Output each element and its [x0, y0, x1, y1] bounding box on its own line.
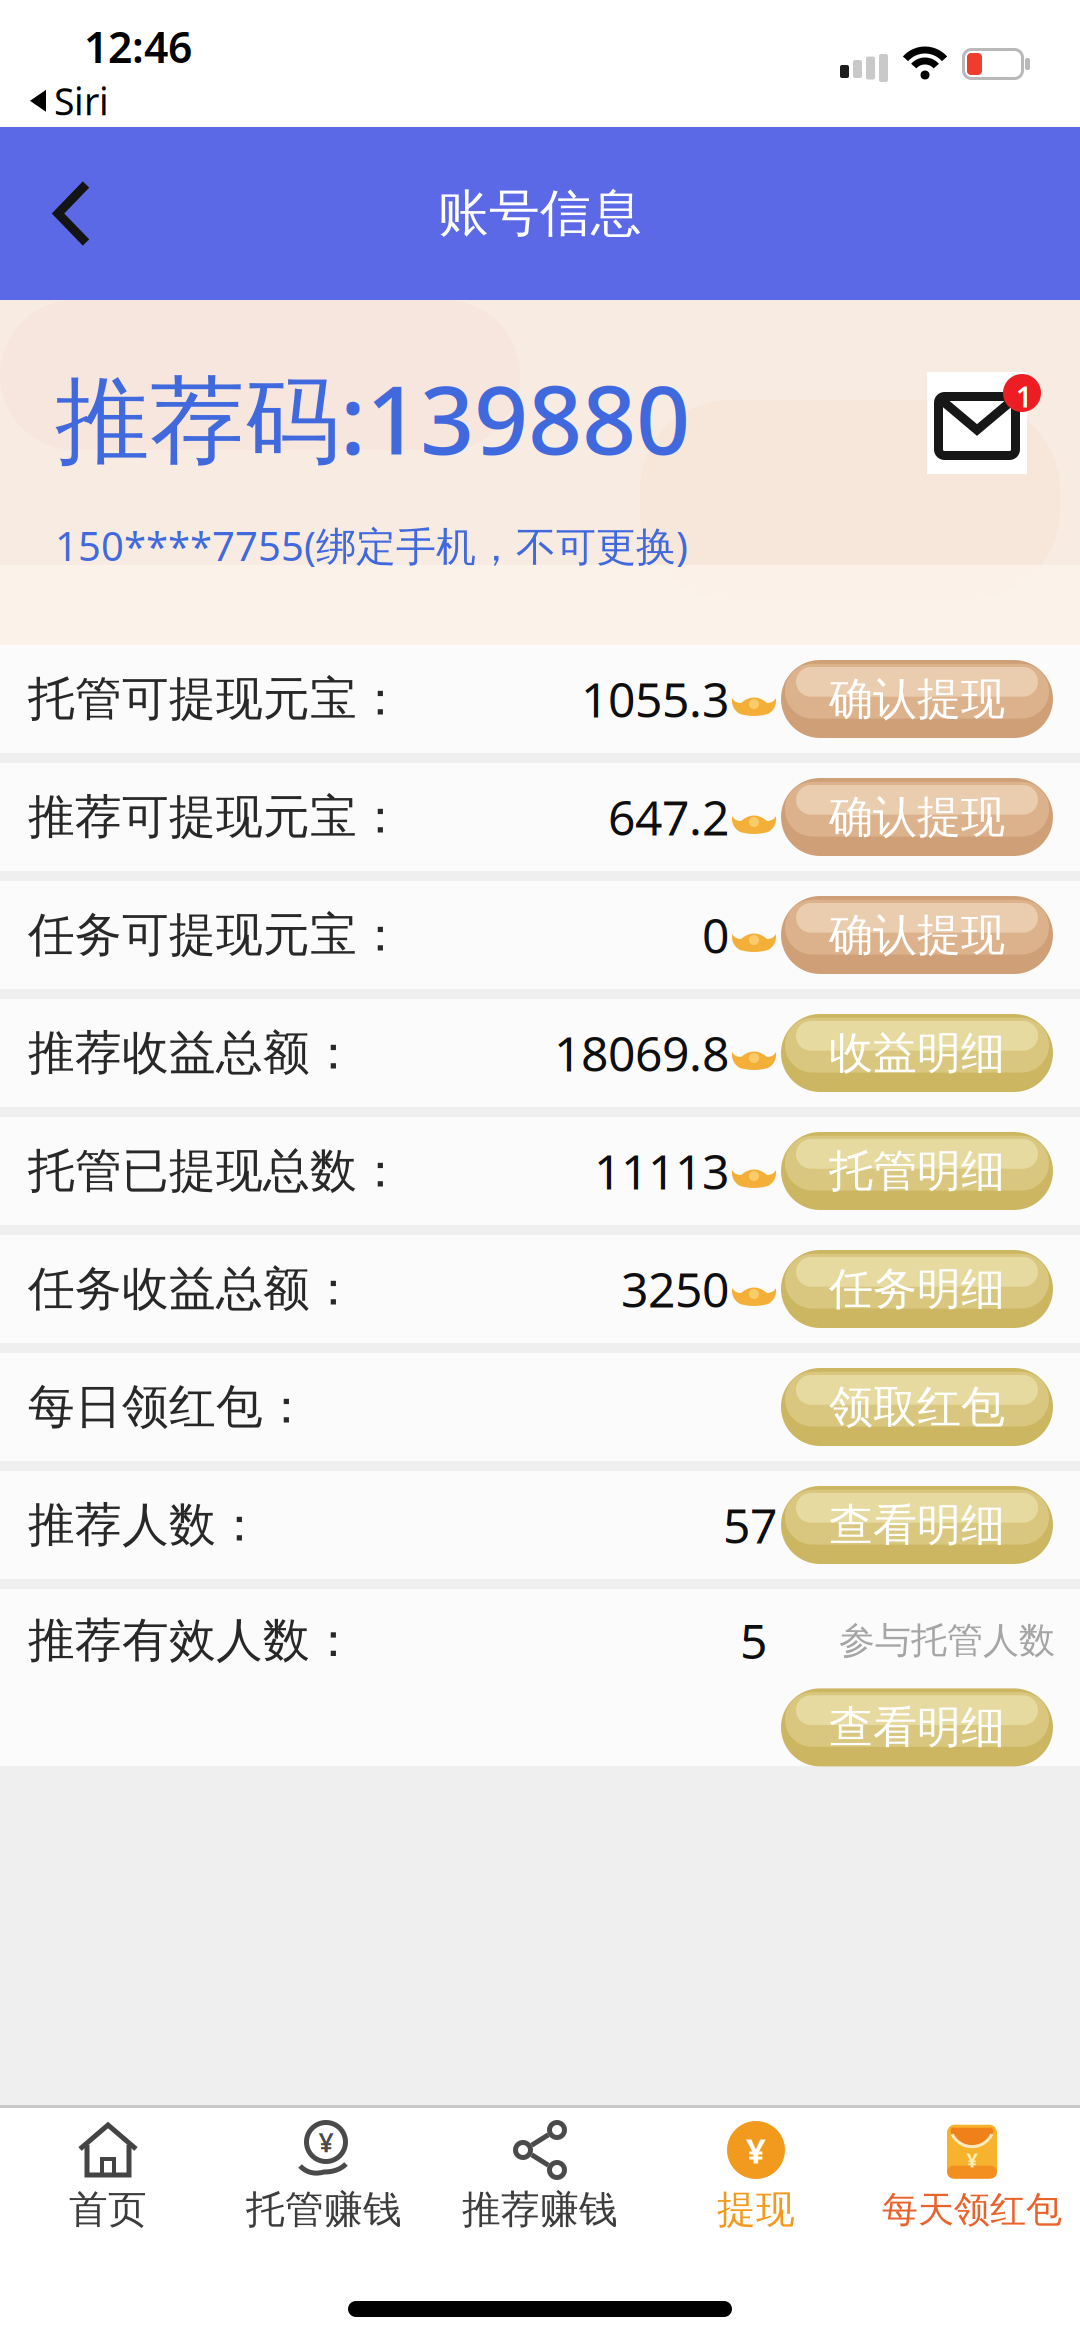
staticText: 每天领红包: [882, 2188, 1062, 2232]
staticText: 托管明细: [829, 1144, 1005, 1198]
staticText: 提现: [717, 2186, 795, 2233]
button[interactable]: 消息: [920, 372, 1034, 474]
button[interactable]: 确认提现: [781, 778, 1053, 856]
staticText: 任务明细: [829, 1262, 1005, 1316]
staticText: 推荐可提现元宝：: [28, 788, 404, 846]
button[interactable]: 领取红包: [781, 1368, 1053, 1446]
staticText: ¥: [318, 2124, 333, 2160]
button[interactable]: 收益明细: [781, 1014, 1053, 1092]
staticText: 账号信息: [438, 182, 642, 245]
button[interactable]: 查看明细: [781, 1486, 1053, 1564]
staticText: 推荐赚钱: [462, 2186, 618, 2233]
button[interactable]: 查看明细: [781, 1688, 1053, 1766]
button[interactable]: Back: [0, 164, 90, 262]
button[interactable]: ¥: [864, 2122, 1080, 2232]
button[interactable]: 首页: [0, 2120, 216, 2233]
staticText: 推荐收益总额：: [28, 1024, 357, 1082]
button[interactable]: ¥: [216, 2120, 432, 2233]
staticText: 查看明细: [829, 1700, 1005, 1754]
staticText: 确认提现: [829, 672, 1005, 726]
staticText: 领取红包: [829, 1380, 1005, 1434]
staticText: 托管可提现元宝：: [28, 670, 404, 728]
staticText: 647.2: [608, 785, 729, 849]
staticText: 0: [702, 903, 729, 967]
staticText: 参与托管人数: [839, 1618, 1055, 1663]
staticText: ¥: [746, 2127, 766, 2173]
staticText: 3250: [621, 1257, 729, 1321]
staticText: 确认提现: [829, 790, 1005, 844]
staticText: 确认提现: [829, 908, 1005, 962]
staticText: 1055.3: [581, 667, 729, 731]
staticText: 150****7755(绑定手机，不可更换): [55, 519, 688, 572]
staticText: 托管赚钱: [246, 2186, 402, 2233]
button[interactable]: 确认提现: [781, 660, 1053, 738]
staticText: 1: [1016, 378, 1032, 415]
staticText: 推荐人数：: [28, 1496, 263, 1554]
staticText: 57: [723, 1493, 777, 1557]
staticText: 12:46: [84, 18, 192, 75]
staticText: 18069.8: [554, 1021, 729, 1085]
button[interactable]: ¥: [648, 2120, 864, 2233]
staticText: 托管已提现总数：: [28, 1142, 404, 1200]
staticText: ¥: [966, 2146, 977, 2173]
staticText: 查看明细: [829, 1498, 1005, 1552]
staticText: 推荐码:139880: [55, 355, 690, 481]
staticText: 任务收益总额：: [28, 1260, 357, 1318]
button[interactable]: 任务明细: [781, 1250, 1053, 1328]
button[interactable]: 推荐赚钱: [432, 2120, 648, 2233]
staticText: 推荐有效人数：: [28, 1612, 357, 1669]
staticText: Siri: [54, 76, 109, 126]
button[interactable]: 确认提现: [781, 896, 1053, 974]
staticText: 每日领红包：: [28, 1378, 310, 1436]
staticText: 任务可提现元宝：: [28, 906, 404, 964]
staticText: 收益明细: [829, 1026, 1005, 1080]
staticText: 5: [740, 1609, 767, 1672]
staticText: 11113: [594, 1139, 729, 1203]
button[interactable]: 托管明细: [781, 1132, 1053, 1210]
staticText: 首页: [69, 2186, 147, 2233]
